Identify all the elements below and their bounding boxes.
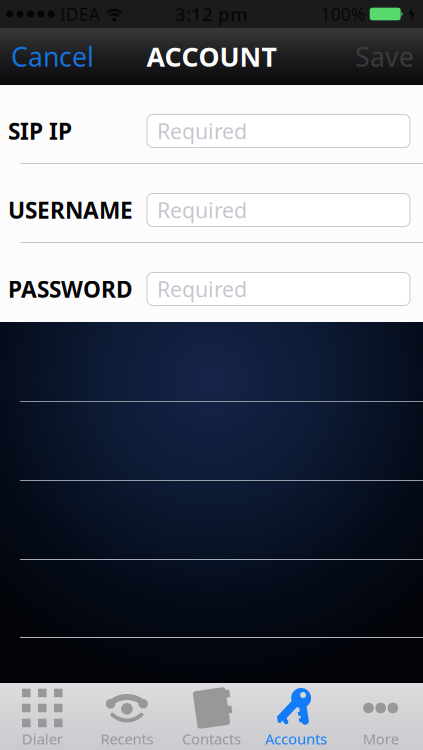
button[interactable]: Dialer <box>0 683 85 748</box>
staticText: Accounts <box>265 729 327 748</box>
staticText: IDEA <box>60 2 100 25</box>
button[interactable]: More <box>338 683 423 748</box>
staticText: Required <box>157 117 247 145</box>
staticText: 100% <box>321 2 365 25</box>
button[interactable]: Cancel <box>11 39 94 74</box>
staticText: SIP IP <box>8 116 72 146</box>
staticText: USERNAME <box>8 195 133 225</box>
button[interactable]: Recents <box>85 683 169 748</box>
staticText: ACCOUNT <box>146 39 276 74</box>
button[interactable]: USERNAME text field <box>147 193 410 226</box>
staticText: Required <box>157 196 247 224</box>
staticText: PASSWORD <box>8 274 133 304</box>
staticText: Recents <box>100 729 153 748</box>
staticText: Save <box>355 39 414 74</box>
staticText: Cancel <box>11 39 94 74</box>
button[interactable]: PASSWORD text field <box>147 272 410 305</box>
staticText: Dialer <box>22 729 63 748</box>
staticText: More <box>363 729 399 748</box>
button[interactable]: Accounts <box>254 683 338 748</box>
staticText: Required <box>157 275 247 303</box>
staticText: Contacts <box>182 729 241 748</box>
button[interactable]: Save <box>355 39 414 74</box>
button[interactable]: SIP IP text field <box>147 114 410 147</box>
button[interactable]: Contacts <box>169 683 254 748</box>
staticText: 3:12 pm <box>175 2 248 26</box>
